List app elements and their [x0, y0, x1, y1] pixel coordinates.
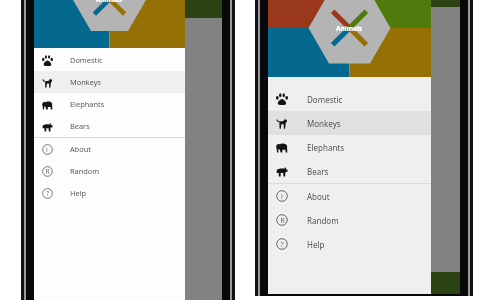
staticText: Animals [96, 0, 123, 4]
staticText: About [70, 144, 91, 154]
button[interactable]: Monkeys [268, 111, 431, 135]
staticText: R [45, 167, 50, 176]
button[interactable]: Bears [268, 159, 431, 183]
staticText: About [307, 191, 330, 202]
button[interactable]: Domestic [34, 49, 185, 71]
button[interactable]: Domestic [268, 87, 431, 111]
staticText: Animals [336, 24, 363, 33]
staticText: Help [307, 239, 325, 250]
button[interactable]: ? [268, 232, 431, 256]
button[interactable]: Elephants [268, 135, 431, 159]
button[interactable]: Monkeys [34, 71, 185, 93]
staticText: Domestic [307, 94, 343, 105]
button[interactable]: R [268, 208, 431, 232]
button[interactable]: ? [34, 182, 185, 204]
staticText: i [281, 191, 283, 201]
button[interactable]: Bears [34, 115, 185, 137]
staticText: i [46, 145, 48, 154]
staticText: ? [46, 189, 49, 198]
staticText: ? [280, 239, 284, 249]
button[interactable]: R [34, 160, 185, 182]
button[interactable]: Elephants [34, 93, 185, 115]
staticText: Random [70, 166, 100, 176]
staticText: Random [307, 215, 339, 226]
button[interactable]: i [34, 138, 185, 160]
staticText: Domestic [70, 55, 103, 65]
staticText: Monkeys [307, 118, 341, 129]
staticText: R [280, 215, 285, 225]
button[interactable]: i [268, 184, 431, 208]
staticText: Monkeys [70, 77, 102, 87]
staticText: Bears [307, 166, 329, 177]
staticText: Elephants [70, 99, 105, 109]
staticText: Elephants [307, 142, 345, 153]
staticText: Bears [70, 121, 90, 131]
staticText: Help [70, 188, 87, 198]
